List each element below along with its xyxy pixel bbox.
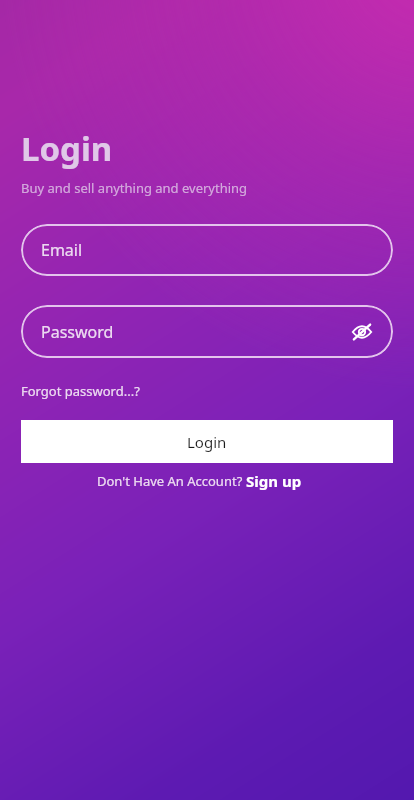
staticText: Login bbox=[21, 126, 113, 171]
staticText: Sign up bbox=[246, 471, 302, 491]
button[interactable]: Login bbox=[21, 420, 393, 463]
staticText: Buy and sell anything and everything bbox=[21, 179, 248, 197]
button[interactable]: Password bbox=[21, 305, 393, 358]
button[interactable]: Email bbox=[21, 224, 393, 276]
staticText: Password bbox=[41, 321, 114, 343]
button[interactable]: Don't Have An Account? bbox=[97, 471, 302, 491]
staticText: Don't Have An Account? bbox=[97, 472, 246, 490]
staticText: Login bbox=[187, 432, 227, 452]
button[interactable]: Forgot password...? bbox=[21, 382, 140, 400]
button[interactable]: Show password bbox=[347, 317, 377, 347]
staticText: Email bbox=[41, 239, 83, 261]
staticText: Forgot password...? bbox=[21, 382, 140, 400]
